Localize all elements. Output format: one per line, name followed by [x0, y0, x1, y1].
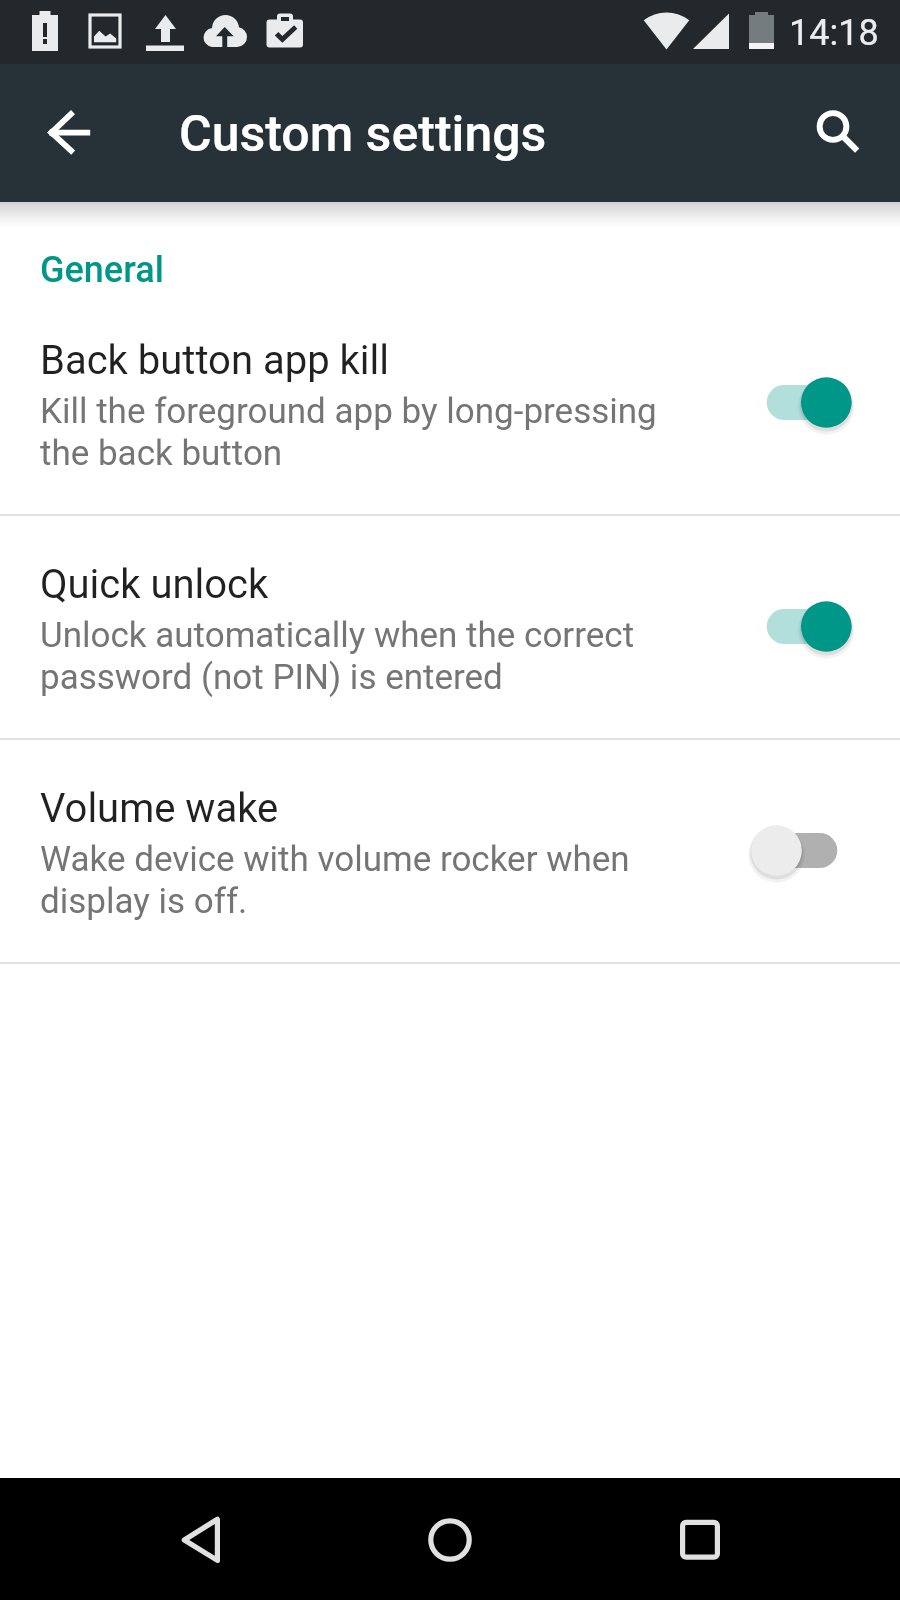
- staticText: Back button app kill: [40, 337, 720, 384]
- staticText: Custom settings: [179, 105, 547, 164]
- button[interactable]: Navigate up: [24, 84, 120, 180]
- button[interactable]: Home: [390, 1480, 510, 1600]
- button[interactable]: Search: [785, 84, 881, 180]
- button[interactable]: Back: [140, 1480, 260, 1600]
- button[interactable]: On: [734, 352, 870, 456]
- staticText: Unlock automatically when the correct pa…: [40, 615, 705, 697]
- staticText: 14:18: [789, 12, 879, 54]
- button[interactable]: Off: [734, 800, 870, 904]
- staticText: Kill the foreground app by long-pressing…: [40, 391, 705, 473]
- button[interactable]: Volume wake: [0, 740, 900, 964]
- button[interactable]: On: [734, 576, 870, 680]
- staticText: Volume wake: [40, 785, 720, 832]
- button[interactable]: Back button app kill: [0, 292, 900, 516]
- button[interactable]: Recent apps: [640, 1480, 760, 1600]
- button[interactable]: Quick unlock: [0, 516, 900, 740]
- staticText: General: [40, 249, 165, 291]
- staticText: Quick unlock: [40, 561, 720, 608]
- staticText: Wake device with volume rocker when disp…: [40, 839, 705, 921]
